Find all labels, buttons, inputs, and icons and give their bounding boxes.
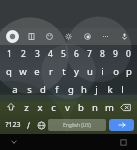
staticText: n [92,101,98,114]
staticText: 9 [113,48,118,60]
button[interactable]: g [64,80,77,98]
button[interactable]: x [33,98,46,116]
button[interactable]: q [2,62,16,80]
button[interactable]: Google [6,30,19,43]
button[interactable]: 7 [83,46,96,62]
staticText: 4 [48,48,53,60]
button[interactable]: 6 [70,46,83,62]
staticText: 0 [126,48,131,60]
button[interactable]: n [88,98,102,116]
staticText: 6 [74,48,79,60]
button[interactable]: Settings [62,30,75,43]
button[interactable]: 5 [57,46,70,62]
staticText: English (US) [63,122,91,129]
button[interactable]: b [74,98,88,116]
staticText: o [113,65,119,78]
button[interactable]: 3 [30,46,44,62]
staticText: i [101,65,104,78]
staticText: q [6,65,12,78]
staticText: k [107,83,113,96]
button[interactable]: h [77,80,90,98]
button[interactable]: Translate [81,30,94,43]
staticText: 8 [100,48,105,60]
staticText: j [95,83,98,96]
staticText: ?123 [5,120,21,130]
button[interactable]: w [16,62,30,80]
button[interactable]: 8 [96,46,109,62]
staticText: g [68,83,74,96]
staticText: w [19,65,27,78]
button[interactable]: Change language [35,116,48,134]
button[interactable]: u [83,62,96,80]
button[interactable]: 0 [122,46,135,62]
staticText: f [55,83,59,96]
staticText: 2 [21,48,26,60]
button[interactable]: Space [48,119,106,131]
staticText: l [121,83,124,96]
button[interactable]: k [103,80,116,98]
button[interactable]: 2 [16,46,30,62]
button[interactable]: m [102,98,116,116]
staticText: s [27,83,32,96]
staticText: a [12,83,18,96]
staticText: u [87,65,93,78]
button[interactable]: Themes [25,30,38,43]
button[interactable]: y [70,62,83,80]
button[interactable]: r [44,62,57,80]
button[interactable]: Sticker [43,30,56,43]
button[interactable]: l [116,80,129,98]
staticText: b [78,101,84,114]
button[interactable]: c [46,98,60,116]
button[interactable]: / [22,116,35,134]
staticText: 1 [7,48,12,60]
button[interactable]: a [8,80,22,98]
button[interactable]: j [90,80,103,98]
button[interactable]: Shift [2,98,20,116]
button[interactable]: e [30,62,44,80]
button[interactable]: ?123 [3,116,22,134]
button[interactable]: s [22,80,36,98]
staticText: t [62,65,66,78]
button[interactable]: More options [99,30,112,43]
button[interactable]: o [109,62,122,80]
button[interactable]: 9 [109,46,122,62]
button[interactable]: Voice input [118,30,131,43]
staticText: r [49,65,53,78]
staticText: h [81,83,87,96]
staticText: m [105,101,114,114]
staticText: d [40,83,46,96]
button[interactable]: i [96,62,109,80]
staticText: z [24,101,29,114]
staticText: e [34,65,40,78]
staticText: c [51,101,56,114]
button[interactable]: Hide keyboard [8,136,20,148]
staticText: 5 [61,48,66,60]
staticText: / [27,120,30,131]
staticText: x [37,101,43,114]
button[interactable]: d [36,80,50,98]
staticText: 3 [35,48,40,60]
staticText: y [74,65,79,78]
button[interactable]: t [57,62,70,80]
staticText: p [126,65,132,78]
staticText: 7 [87,48,92,60]
button[interactable]: 1 [2,46,16,62]
button[interactable]: p [122,62,135,80]
button[interactable]: z [20,98,33,116]
button[interactable]: f [50,80,64,98]
staticText: v [65,101,70,114]
button[interactable]: 4 [44,46,57,62]
button[interactable]: Backspace [116,98,135,116]
button[interactable]: Enter [109,119,134,131]
button[interactable]: v [60,98,74,116]
button[interactable]: Recents [117,136,129,148]
